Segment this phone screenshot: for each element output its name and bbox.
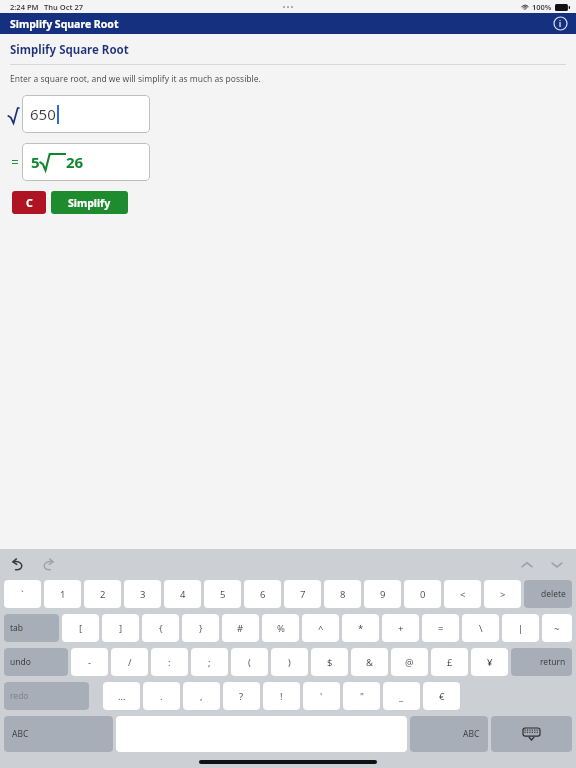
button[interactable]: .	[143, 682, 180, 710]
button[interactable]: Next field	[550, 558, 564, 572]
button[interactable]: 650	[22, 95, 150, 133]
button[interactable]: tab	[4, 614, 59, 642]
button[interactable]: >	[484, 580, 521, 608]
button[interactable]: 0	[404, 580, 441, 608]
button[interactable]: 5	[204, 580, 241, 608]
staticText: 7	[300, 588, 306, 601]
button[interactable]: &	[351, 648, 388, 676]
button[interactable]: ,	[183, 682, 220, 710]
button[interactable]: 6	[244, 580, 281, 608]
staticText: return	[540, 656, 566, 668]
button[interactable]: Simplify	[51, 191, 128, 214]
staticText: _	[399, 690, 404, 703]
button[interactable]: }	[182, 614, 219, 642]
button[interactable]: 9	[364, 580, 401, 608]
button[interactable]: 8	[324, 580, 361, 608]
staticText: tab	[10, 622, 24, 634]
button[interactable]: @	[391, 648, 428, 676]
staticText: Simplify Square Root	[10, 42, 129, 58]
staticText: 0	[420, 588, 426, 601]
staticText: 650	[30, 104, 56, 124]
button[interactable]: *	[342, 614, 379, 642]
button[interactable]: 5	[22, 143, 150, 181]
button[interactable]: 1	[44, 580, 81, 608]
staticText: (	[248, 656, 251, 669]
button[interactable]: ¥	[471, 648, 508, 676]
staticText: Enter a square root, and we will simplif…	[10, 73, 261, 85]
button[interactable]: Undo	[10, 557, 26, 573]
button[interactable]: 2	[84, 580, 121, 608]
button[interactable]: £	[431, 648, 468, 676]
button[interactable]: )	[271, 648, 308, 676]
button[interactable]: %	[262, 614, 299, 642]
staticText: =	[8, 153, 22, 171]
button[interactable]: undo	[4, 648, 68, 676]
staticText: =	[438, 622, 444, 635]
staticText: 100%	[532, 2, 552, 12]
staticText: ?	[239, 690, 244, 703]
staticText: …	[118, 690, 126, 703]
staticText: .	[160, 690, 163, 703]
button[interactable]: #	[222, 614, 259, 642]
staticText: 26	[66, 152, 84, 172]
button[interactable]: _	[383, 682, 420, 710]
button[interactable]: 4	[164, 580, 201, 608]
button[interactable]: -	[71, 648, 108, 676]
button[interactable]: Hide keyboard	[491, 716, 572, 752]
button[interactable]: delete	[524, 580, 572, 608]
button[interactable]: +	[382, 614, 419, 642]
staticText: '	[320, 690, 323, 703]
button[interactable]: [	[62, 614, 99, 642]
staticText: \	[479, 622, 483, 635]
staticText: &	[366, 656, 373, 669]
button[interactable]: C	[12, 191, 46, 214]
button[interactable]: (	[231, 648, 268, 676]
button[interactable]: redo	[4, 682, 89, 710]
button[interactable]: "	[343, 682, 380, 710]
button[interactable]: |	[502, 614, 539, 642]
staticText: )	[288, 656, 291, 669]
staticText: @	[405, 656, 414, 669]
staticText: `	[21, 588, 24, 601]
button[interactable]: ?	[223, 682, 260, 710]
staticText: 6	[260, 588, 266, 601]
button[interactable]: `	[4, 580, 41, 608]
staticText: 3	[140, 588, 146, 601]
button[interactable]: ^	[302, 614, 339, 642]
button[interactable]: 3	[124, 580, 161, 608]
button[interactable]: €	[423, 682, 460, 710]
button[interactable]: return	[511, 648, 572, 676]
button[interactable]: ~	[542, 614, 572, 642]
button[interactable]: <	[444, 580, 481, 608]
staticText: ^	[318, 622, 324, 635]
button[interactable]: $	[311, 648, 348, 676]
button[interactable]: Previous field	[520, 558, 534, 572]
staticText: ;	[208, 656, 211, 669]
staticText: <	[460, 588, 466, 601]
staticText: 1	[60, 588, 66, 601]
button[interactable]: ABC	[4, 716, 113, 752]
staticText: ¥	[487, 656, 493, 669]
button[interactable]: ABC	[410, 716, 488, 752]
button[interactable]: ]	[102, 614, 139, 642]
button[interactable]: …	[103, 682, 140, 710]
staticText: #	[237, 622, 244, 635]
button[interactable]: Info	[553, 16, 568, 31]
button[interactable]: ;	[191, 648, 228, 676]
staticText: redo	[10, 690, 29, 702]
button[interactable]: :	[151, 648, 188, 676]
button[interactable]: /	[111, 648, 148, 676]
staticText: -	[88, 656, 92, 669]
staticText: :	[168, 656, 171, 669]
button[interactable]: =	[422, 614, 459, 642]
button[interactable]: '	[303, 682, 340, 710]
button[interactable]: 7	[284, 580, 321, 608]
button[interactable]: \	[462, 614, 499, 642]
staticText: 8	[340, 588, 346, 601]
staticText: }	[199, 622, 203, 635]
button[interactable]: {	[142, 614, 179, 642]
staticText: {	[159, 622, 163, 635]
button[interactable]: Redo	[40, 557, 56, 573]
button[interactable]: !	[263, 682, 300, 710]
